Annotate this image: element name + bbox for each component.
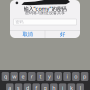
button[interactable]: 取消: [10, 30, 45, 38]
button[interactable]: a: [6, 83, 13, 90]
button[interactable]: h: [50, 83, 57, 90]
button[interactable]: o: [72, 72, 79, 81]
staticText: h: [52, 84, 55, 90]
button[interactable]: 好: [45, 30, 80, 38]
button[interactable]: t: [37, 72, 44, 81]
staticText: k: [70, 84, 73, 90]
staticText: y: [48, 73, 51, 80]
staticText: w: [12, 73, 16, 80]
button[interactable]: i: [63, 72, 71, 81]
staticText: 密码将与附近设备共享: [25, 10, 65, 15]
staticText: f: [35, 84, 37, 90]
staticText: d: [26, 84, 29, 90]
button[interactable]: j: [59, 83, 66, 90]
staticText: i: [66, 73, 67, 80]
button[interactable]: k: [68, 83, 75, 90]
staticText: 取消: [22, 31, 32, 37]
staticText: g: [43, 84, 46, 90]
button[interactable]: y: [46, 72, 53, 81]
staticText: j: [62, 84, 63, 90]
button[interactable]: w: [10, 72, 18, 81]
staticText: s: [17, 84, 20, 90]
button[interactable]: s: [15, 83, 22, 90]
staticText: 密码: [16, 19, 24, 24]
button[interactable]: e: [19, 72, 27, 81]
button[interactable]: f: [32, 83, 40, 90]
staticText: 输入“comy”的密码: [23, 5, 66, 12]
staticText: 好: [60, 31, 65, 37]
staticText: u: [57, 73, 60, 80]
staticText: q: [4, 73, 7, 80]
button[interactable]: q: [2, 72, 9, 81]
staticText: o: [74, 73, 77, 80]
button[interactable]: l: [76, 83, 84, 90]
button[interactable]: r: [28, 72, 36, 81]
button[interactable]: g: [41, 83, 49, 90]
staticText: r: [31, 73, 33, 80]
staticText: p: [83, 73, 86, 80]
staticText: e: [21, 73, 24, 80]
button[interactable]: p: [81, 72, 88, 81]
staticText: a: [8, 84, 11, 90]
button[interactable]: d: [24, 83, 31, 90]
staticText: t: [40, 73, 42, 80]
button[interactable]: u: [54, 72, 62, 81]
staticText: l: [80, 84, 81, 90]
